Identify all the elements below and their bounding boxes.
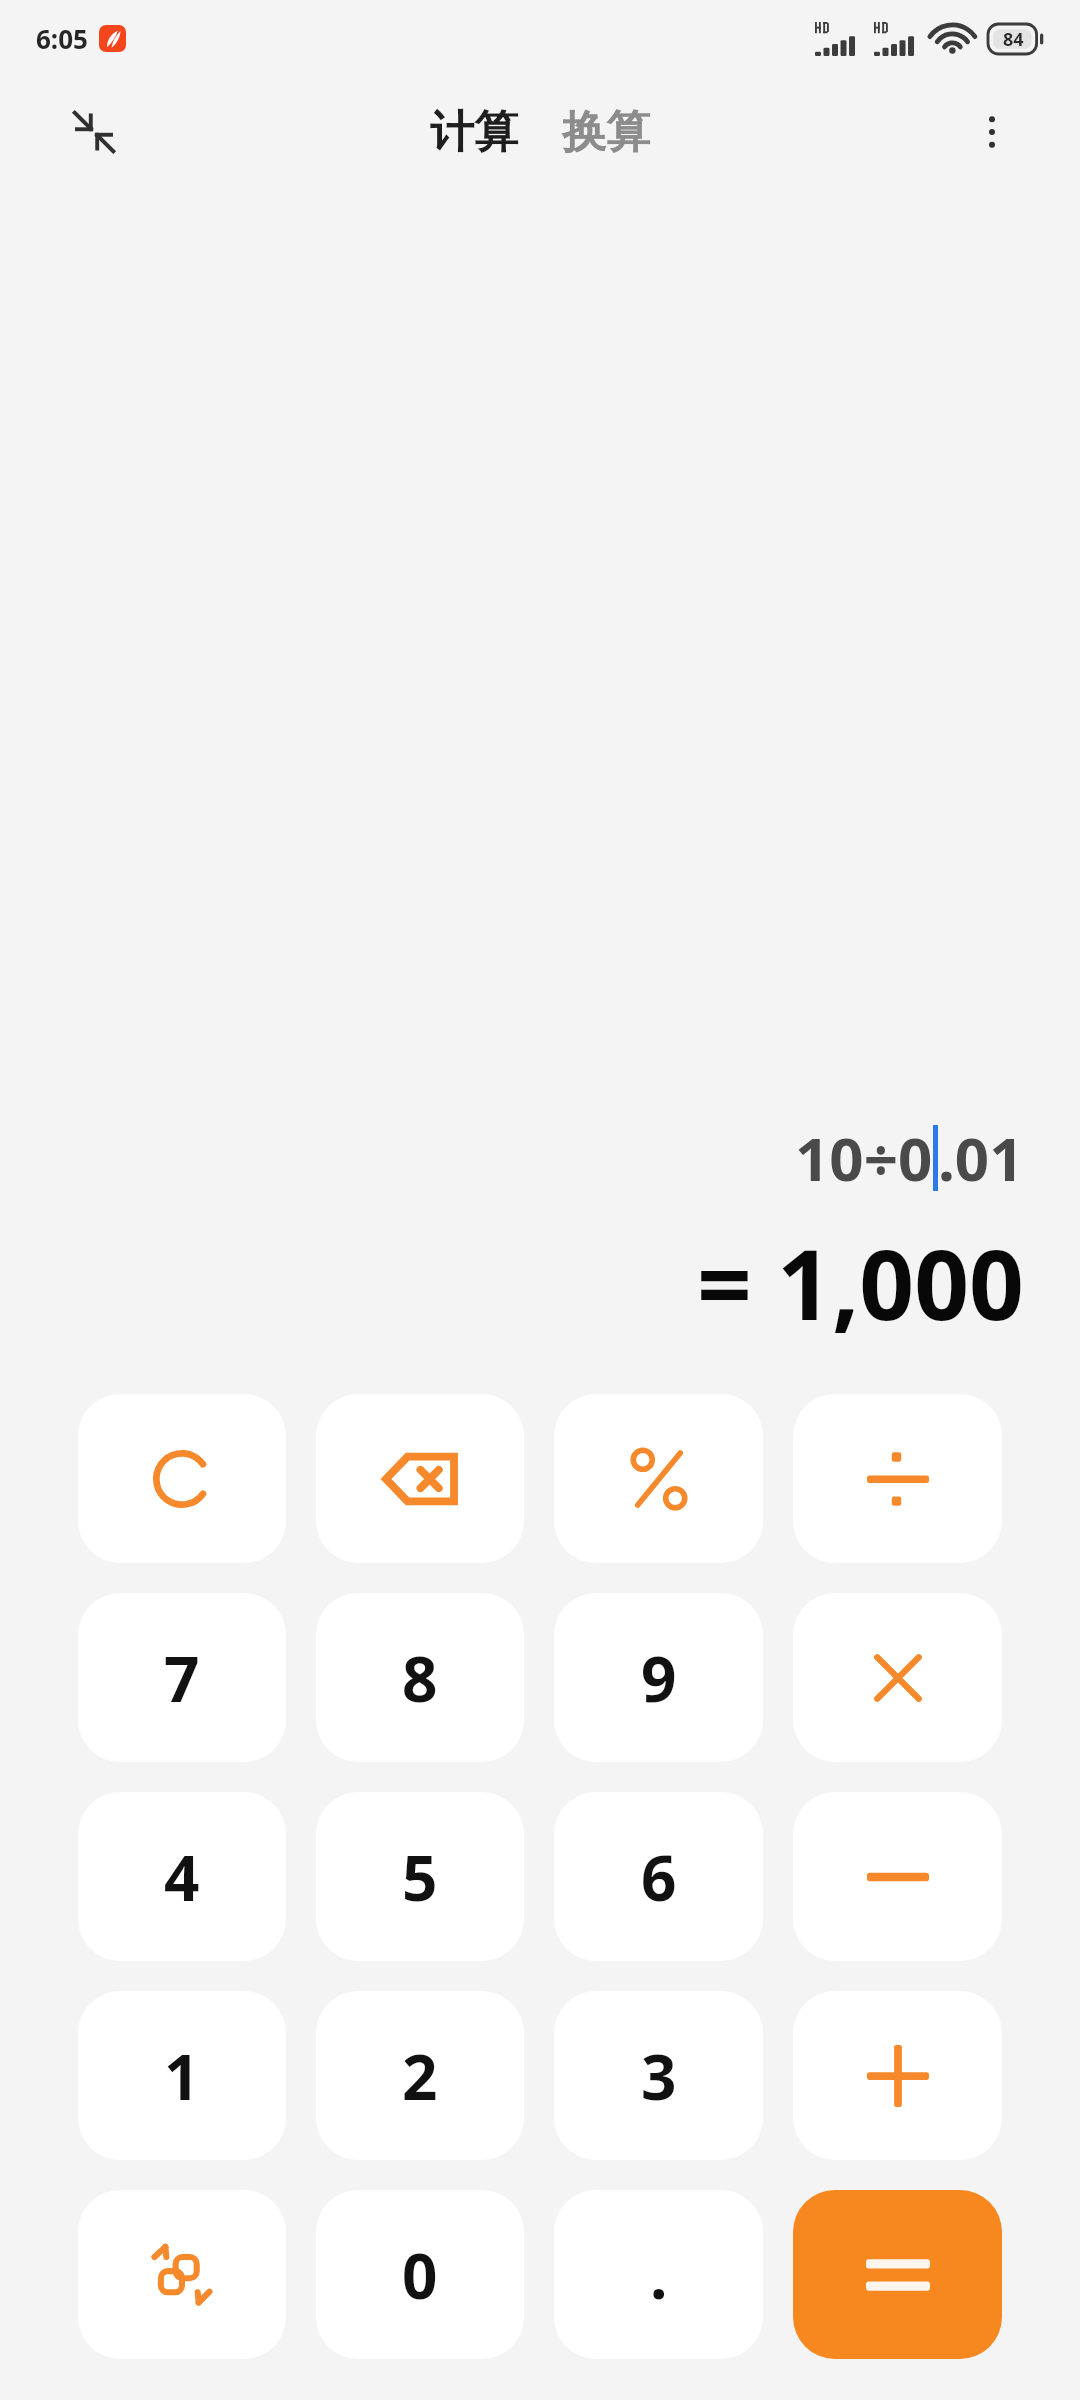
button[interactable]: 0	[316, 2190, 524, 2359]
button[interactable]: 6	[554, 1792, 763, 1961]
staticText: 84	[1003, 27, 1024, 52]
button[interactable]: Convert	[78, 2190, 286, 2359]
other: Plus	[867, 2045, 929, 2107]
staticText: .01	[938, 1117, 1024, 1199]
other: Minus	[867, 1867, 929, 1887]
other: Divide	[867, 1450, 929, 1508]
other: Backspace	[383, 1452, 457, 1506]
button[interactable]: Equals	[793, 2190, 1002, 2359]
button[interactable]: 1	[78, 1991, 286, 2160]
staticText: 4	[164, 1835, 200, 1919]
staticText: .	[650, 2233, 668, 2317]
button[interactable]: 4	[78, 1792, 286, 1961]
other: Multiply	[871, 1651, 925, 1705]
button[interactable]: 7	[78, 1593, 286, 1762]
button[interactable]: More options	[960, 100, 1024, 164]
button[interactable]: 换算	[552, 97, 660, 168]
staticText: 6	[641, 1835, 677, 1919]
staticText: 8	[402, 1636, 438, 1720]
button[interactable]: Divide	[793, 1394, 1002, 1563]
staticText: 0	[402, 2233, 438, 2317]
staticText: = 1,000	[697, 1217, 1024, 1348]
button[interactable]: .	[554, 2190, 763, 2359]
other: Clear	[153, 1450, 211, 1508]
button[interactable]: 2	[316, 1991, 524, 2160]
button[interactable]: Minus	[793, 1792, 1002, 1961]
button[interactable]: 3	[554, 1991, 763, 2160]
other: Convert	[150, 2243, 214, 2307]
staticText: 7	[164, 1636, 200, 1720]
button[interactable]: Collapse	[62, 100, 126, 164]
staticText: 6:05	[36, 21, 88, 56]
staticText: 9	[641, 1636, 677, 1720]
staticText: 3	[641, 2034, 677, 2118]
button[interactable]: Percent	[554, 1394, 763, 1563]
button[interactable]: 5	[316, 1792, 524, 1961]
button[interactable]: Backspace	[316, 1394, 524, 1563]
staticText: 1	[164, 2034, 200, 2118]
other: Percent	[631, 1448, 687, 1510]
button[interactable]: Plus	[793, 1991, 1002, 2160]
staticText: 计算	[430, 105, 518, 160]
staticText: 换算	[562, 105, 650, 160]
staticText: 2	[402, 2034, 438, 2118]
button[interactable]: 9	[554, 1593, 763, 1762]
staticText: 5	[402, 1835, 438, 1919]
staticText: 10÷0	[795, 1117, 933, 1199]
button[interactable]: Clear	[78, 1394, 286, 1563]
button[interactable]: 计算	[420, 97, 528, 168]
button[interactable]: Multiply	[793, 1593, 1002, 1762]
button[interactable]: 8	[316, 1593, 524, 1762]
